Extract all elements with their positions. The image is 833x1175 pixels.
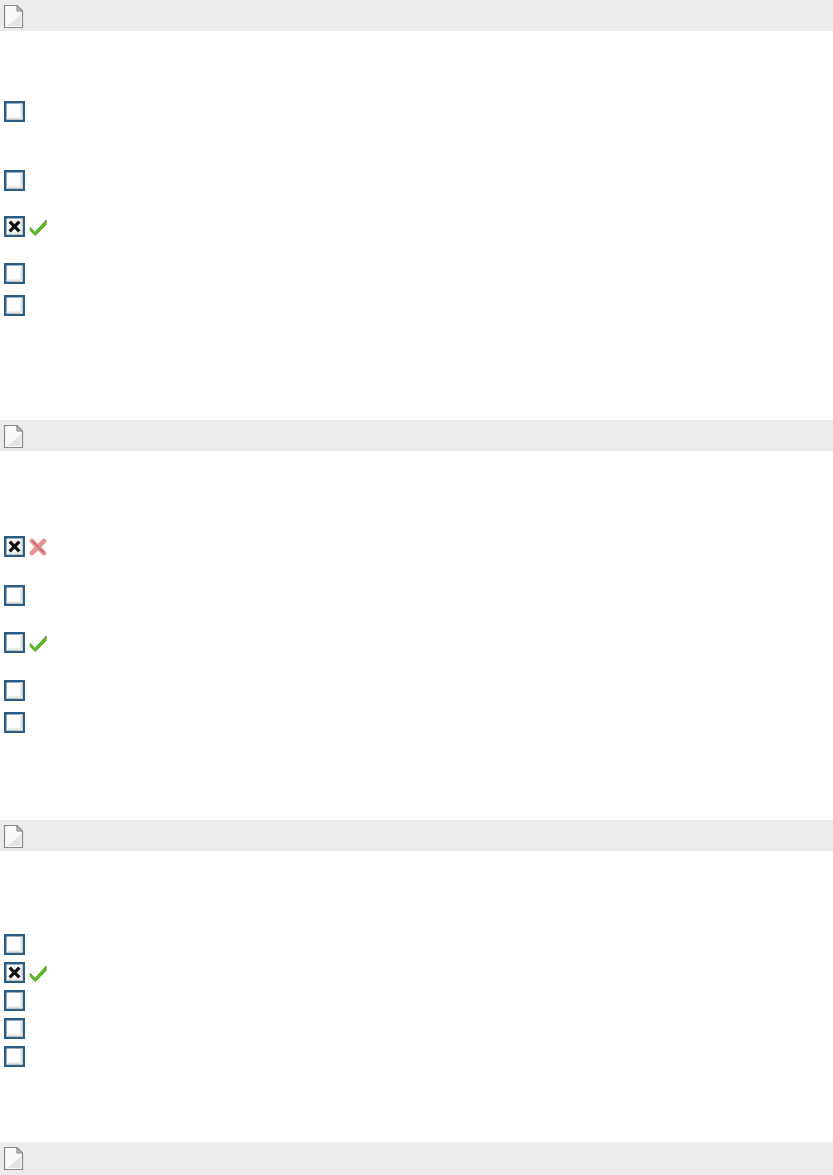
button[interactable]: Invalid: [29, 538, 47, 556]
other: Document: [4, 1147, 23, 1170]
button[interactable]: Unchecked: [4, 990, 25, 1011]
button[interactable]: Unchecked: [4, 1018, 25, 1039]
button[interactable]: Unchecked: [4, 712, 25, 733]
button[interactable]: Checked: [4, 216, 25, 237]
button[interactable]: Unchecked: [4, 934, 25, 955]
button[interactable]: Checked: [4, 536, 25, 557]
button[interactable]: Unchecked: [4, 295, 25, 316]
button[interactable]: Document: [0, 0, 833, 31]
button[interactable]: Unchecked: [4, 101, 25, 122]
button[interactable]: Document: [0, 420, 833, 451]
button[interactable]: Valid: [29, 964, 47, 982]
other: Document: [4, 825, 23, 848]
button[interactable]: Unchecked: [4, 1046, 25, 1067]
button[interactable]: Document: [0, 1142, 833, 1175]
button[interactable]: Unchecked: [4, 680, 25, 701]
button[interactable]: Unchecked: [4, 263, 25, 284]
other: Document: [4, 5, 23, 28]
button[interactable]: Unchecked: [4, 632, 25, 653]
button[interactable]: Document: [0, 820, 833, 851]
button[interactable]: Unchecked: [4, 170, 25, 191]
button[interactable]: Valid: [29, 218, 47, 236]
button[interactable]: Unchecked: [4, 585, 25, 606]
button[interactable]: Checked: [4, 962, 25, 983]
button[interactable]: Valid: [29, 634, 47, 652]
other: Document: [4, 425, 23, 448]
